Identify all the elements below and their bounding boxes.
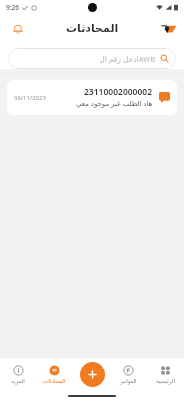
staticText: المزيد <box>11 378 25 384</box>
button[interactable]: Notifications <box>8 19 28 39</box>
staticText: ادخل رقم الAWB <box>99 54 155 64</box>
staticText: 06/11/2023 <box>14 94 46 102</box>
staticText: الفواتير <box>120 378 137 384</box>
staticText: 9:26 <box>6 3 19 12</box>
button[interactable]: المحادثات <box>36 358 73 391</box>
button[interactable]: الرئيسية <box>147 358 184 391</box>
button[interactable]: 06/11/2023 <box>7 80 177 115</box>
staticText: المحادثات <box>43 378 66 384</box>
button[interactable]: ادخل رقم الAWB <box>8 48 176 69</box>
staticText: 23110002000002 <box>84 86 153 98</box>
staticText: الرئيسية <box>156 378 175 384</box>
button[interactable]: الفواتير <box>110 358 147 391</box>
button[interactable]: Profile <box>157 17 180 40</box>
button[interactable]: Add <box>80 362 105 387</box>
button[interactable]: المزيد <box>0 358 36 391</box>
staticText: المحادثات <box>66 22 119 35</box>
staticText: هاد الطلب غير موجود معي <box>76 99 153 109</box>
